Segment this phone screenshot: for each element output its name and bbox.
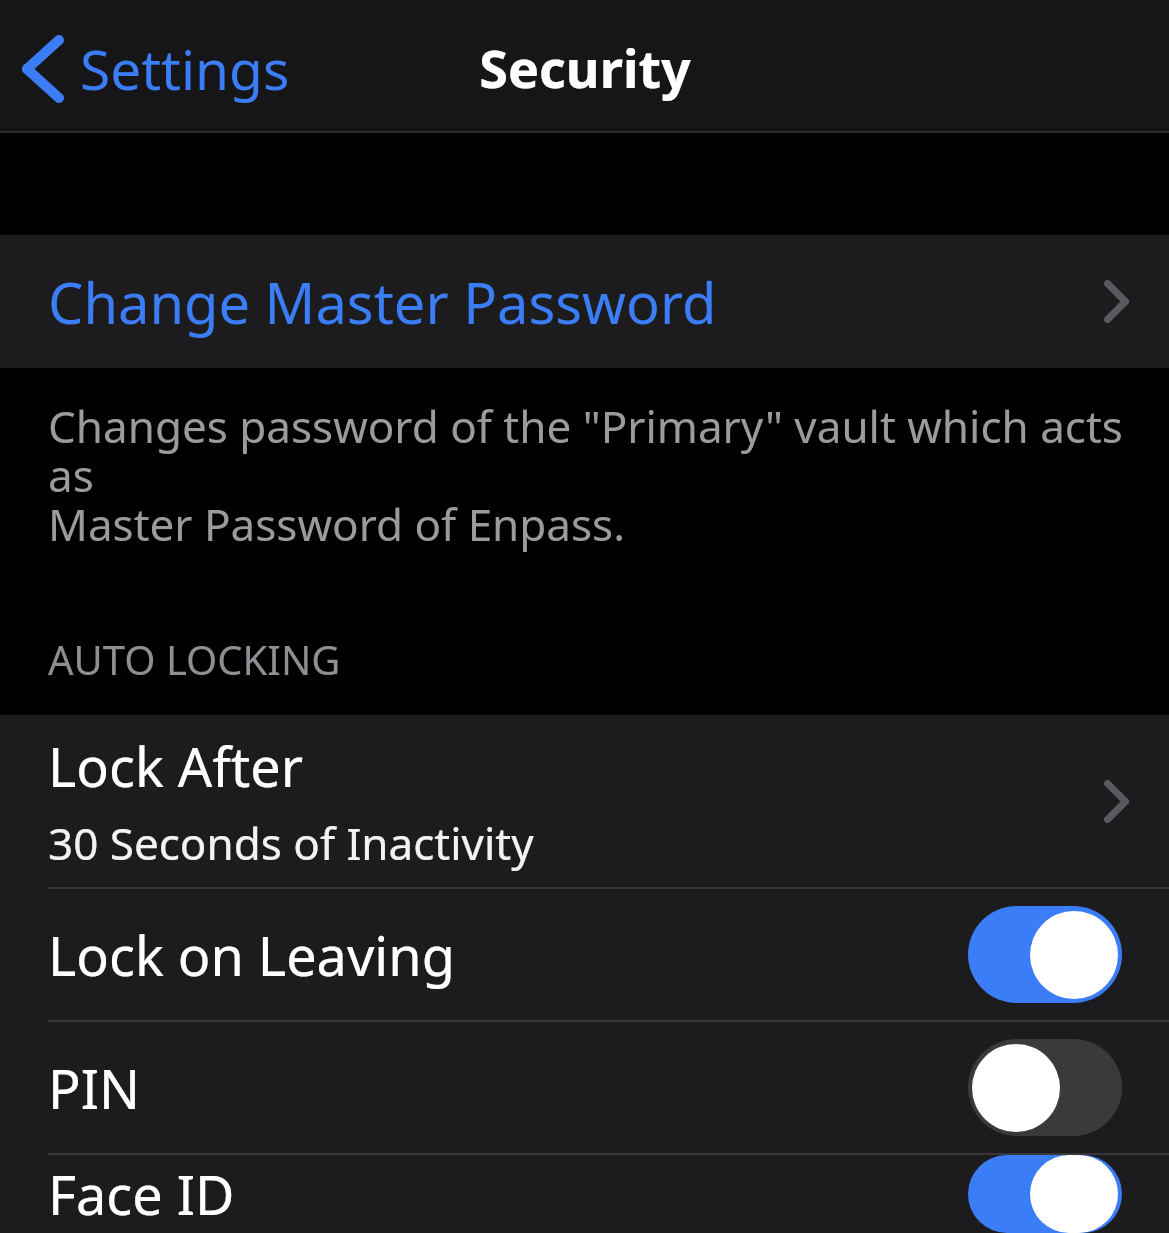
staticText: Security [479, 32, 691, 103]
button[interactable]: Settings [0, 23, 304, 114]
button[interactable]: Lock on Leaving [0, 889, 1169, 1020]
button[interactable]: PIN [0, 1022, 1169, 1153]
staticText: Settings [80, 31, 290, 106]
button[interactable]: On [968, 906, 1122, 1003]
staticText: Lock After [48, 729, 304, 803]
staticText: AUTO LOCKING [48, 632, 341, 686]
staticText: PIN [48, 1051, 968, 1125]
button[interactable]: Lock After [0, 715, 1169, 887]
staticText: Face ID [48, 1157, 968, 1231]
button[interactable]: Off [968, 1039, 1122, 1136]
button[interactable]: Face ID [0, 1155, 1169, 1233]
staticText: Change Master Password [48, 264, 717, 340]
button[interactable]: Change Master Password [0, 235, 1169, 368]
staticText: 30 Seconds of Inactivity [48, 813, 534, 873]
button[interactable]: On [968, 1155, 1122, 1233]
staticText: Changes password of the "Primary" vault … [48, 396, 1129, 554]
staticText: Lock on Leaving [48, 918, 968, 992]
